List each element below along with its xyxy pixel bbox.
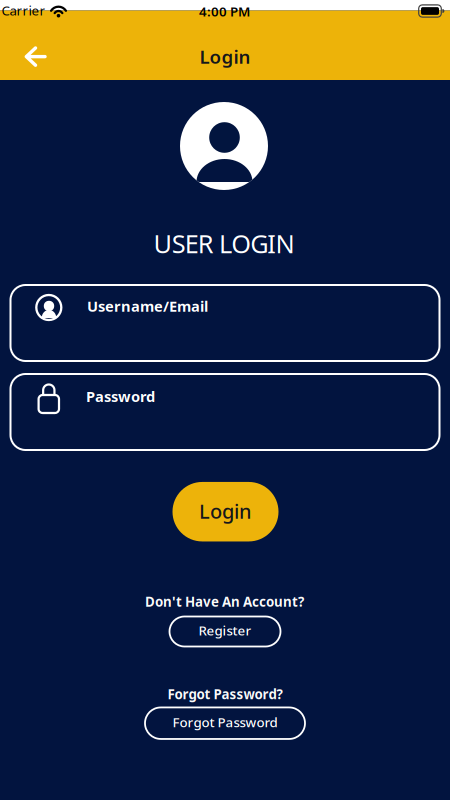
staticText: Don't Have An Account?	[145, 593, 304, 610]
button[interactable]: Forgot Password	[145, 707, 305, 739]
staticText: 4:00 PM	[199, 2, 250, 20]
button[interactable]: Login	[172, 482, 278, 541]
staticText: Register	[198, 621, 251, 639]
button[interactable]: Register	[169, 616, 280, 646]
staticText: Login	[199, 44, 250, 69]
staticText: USER LOGIN	[154, 227, 294, 260]
button[interactable]: Back	[13, 37, 57, 77]
button[interactable]: Password	[10, 374, 439, 450]
staticText: Username/Email	[87, 296, 208, 316]
staticText: Carrier	[1, 1, 45, 19]
staticText: Login	[199, 498, 252, 524]
button[interactable]: Username/Email	[10, 285, 439, 361]
staticText: Forgot Password	[172, 713, 277, 731]
staticText: Forgot Password?	[167, 685, 282, 703]
staticText: Password	[86, 386, 155, 406]
